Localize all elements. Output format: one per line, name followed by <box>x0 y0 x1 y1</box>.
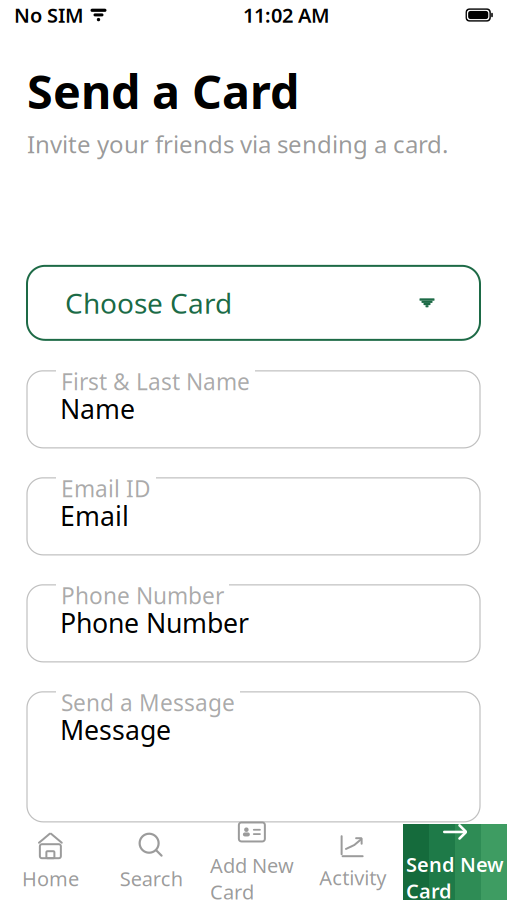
staticText: Email <box>60 498 129 533</box>
staticText: 11:02 AM <box>243 2 330 28</box>
staticText: Send a Message <box>61 687 235 717</box>
staticText: No SIM <box>14 2 84 28</box>
button[interactable]: Activity <box>302 824 403 900</box>
staticText: Phone Number <box>61 580 224 610</box>
staticText: Invite your friends via sending a card. <box>27 128 448 160</box>
staticText: Add New Card <box>210 852 294 900</box>
staticText: Send New Card <box>406 851 504 900</box>
staticText: Activity <box>319 864 386 891</box>
button[interactable]: Home <box>0 824 101 900</box>
button[interactable]: Search <box>101 824 202 900</box>
staticText: Phone Number <box>60 605 249 640</box>
staticText: Email ID <box>61 473 151 503</box>
staticText: Name <box>60 391 135 426</box>
button[interactable]: Choose Card <box>0 266 507 340</box>
staticText: Choose Card <box>65 284 232 321</box>
button[interactable]: Add New Card <box>201 824 302 900</box>
staticText: Send a Card <box>27 60 299 122</box>
staticText: Home <box>22 865 79 892</box>
staticText: Message <box>60 712 171 747</box>
staticText: Search <box>120 865 183 892</box>
button[interactable]: Send New Card <box>403 824 507 900</box>
staticText: First & Last Name <box>61 366 250 396</box>
